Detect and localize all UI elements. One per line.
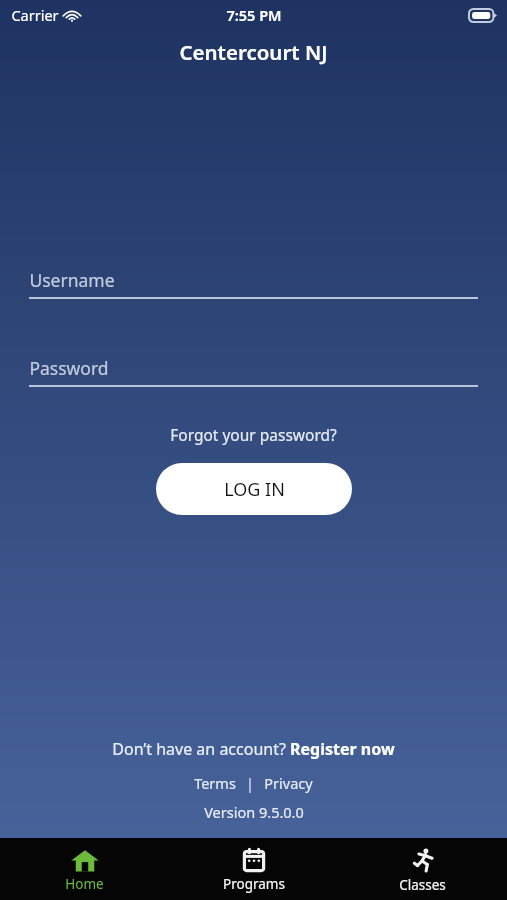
staticText: Classes (399, 876, 446, 894)
button[interactable]: Don’t have an account? Register now (106, 736, 401, 762)
button[interactable]: LOG IN (156, 463, 352, 515)
button[interactable]: Home (0, 838, 169, 900)
staticText: Carrier (11, 5, 59, 25)
staticText: 7:55 PM (226, 5, 282, 25)
other: Home (71, 849, 99, 872)
staticText: LOG IN (224, 477, 285, 502)
staticText: | (246, 773, 254, 793)
other: Programs (242, 848, 266, 872)
staticText: Home (65, 875, 104, 893)
staticText: Username (29, 268, 115, 292)
staticText: Forgot your password? (170, 424, 337, 445)
button[interactable]: Programs (169, 838, 338, 900)
staticText: Terms (194, 773, 236, 793)
staticText: Programs (223, 875, 285, 893)
staticText: Password (29, 356, 109, 380)
button[interactable]: Password (29, 356, 478, 387)
button[interactable]: Username (29, 268, 478, 299)
button[interactable]: Forgot your password? (162, 420, 345, 449)
button[interactable]: Privacy (260, 771, 317, 795)
staticText: Don’t have an account? Register now (112, 738, 395, 760)
staticText: Version 9.5.0.0 (204, 802, 304, 822)
button[interactable]: Classes (338, 838, 507, 900)
staticText: Privacy (264, 773, 313, 793)
button[interactable]: Terms (190, 771, 240, 795)
staticText: Centercourt NJ (179, 38, 328, 66)
other: Classes (411, 848, 435, 873)
